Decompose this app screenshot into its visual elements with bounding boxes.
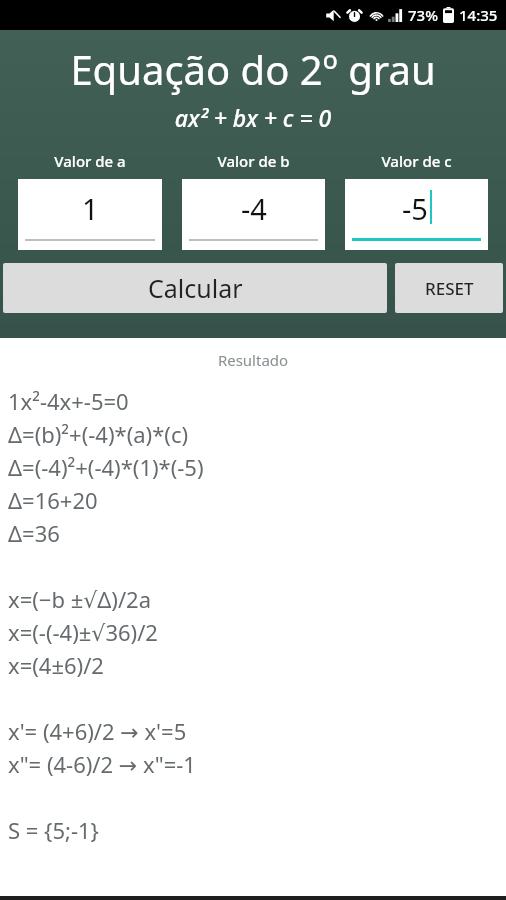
button[interactable]: Calcular [3, 263, 387, 313]
staticText: x'= (4+6)/2 → x'=5 [8, 716, 187, 746]
staticText: RESET [425, 277, 474, 300]
staticText: Equação do 2º grau [0, 42, 506, 96]
staticText: Δ=16+20 [8, 485, 98, 515]
button[interactable]: -4 [182, 179, 325, 250]
staticText: Valor de c [345, 151, 488, 171]
staticText: Valor de a [18, 151, 162, 171]
button[interactable]: RESET [395, 263, 503, 313]
staticText: -5 [402, 189, 428, 228]
staticText: Δ=(-4)²+(-4)*(1)*(-5) [8, 452, 204, 482]
other: Battery [443, 7, 454, 23]
staticText: Resultado [0, 350, 506, 370]
staticText: S = {5;-1} [8, 815, 99, 845]
staticText: Calcular [148, 271, 243, 305]
staticText: x=(4±6)/2 [8, 650, 104, 680]
staticText: Δ=(b)²+(-4)*(a)*(c) [8, 419, 189, 449]
button[interactable]: 1 [18, 179, 162, 250]
other: Signal [388, 8, 403, 22]
staticText: ax² + bx + c = 0 [0, 102, 506, 133]
staticText: x=(-(-4)±√36)/2 [8, 617, 158, 647]
staticText: 1 [82, 189, 99, 228]
staticText: x=(−b ±√Δ)/2a [8, 584, 152, 614]
staticText: 14:35 [459, 5, 498, 25]
other: Wi-Fi [369, 8, 384, 23]
staticText: Δ=36 [8, 518, 60, 548]
staticText: Valor de b [182, 151, 325, 171]
other: Alarm [347, 8, 362, 23]
other: Mute [325, 8, 340, 23]
staticText: x"= (4-6)/2 → x"=-1 [8, 749, 196, 779]
staticText: 73% [408, 5, 438, 25]
staticText: -4 [241, 189, 267, 228]
staticText: 1x²-4x+-5=0 [8, 386, 129, 416]
button[interactable]: -5 [345, 179, 488, 250]
